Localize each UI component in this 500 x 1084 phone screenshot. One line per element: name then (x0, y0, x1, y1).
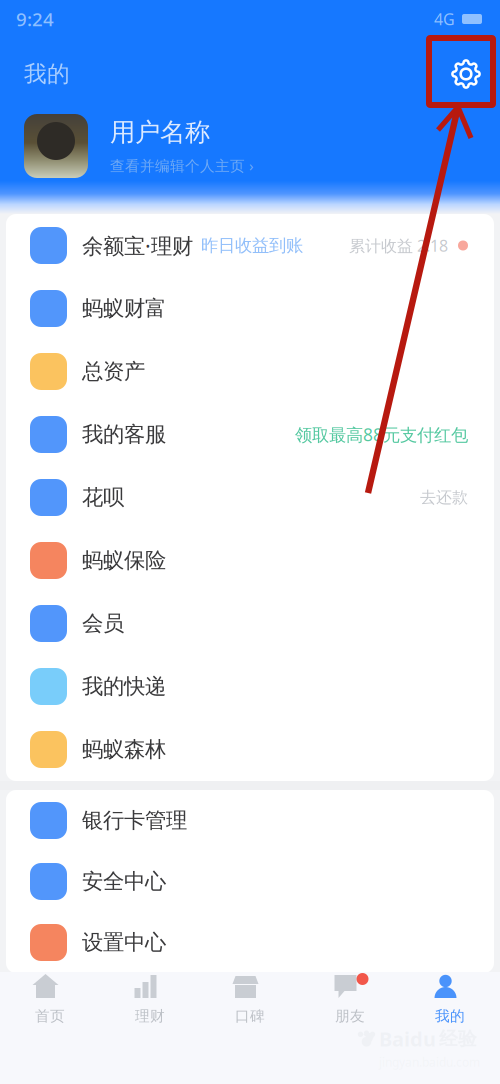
staticText: 安全中心 (82, 868, 166, 895)
staticText: 领取最高88元支付红包 (295, 423, 468, 446)
button[interactable]: 蚂蚁保险 (6, 529, 494, 592)
staticText: 4G (434, 8, 455, 30)
button[interactable]: 安全中心 (6, 851, 494, 912)
button[interactable]: 蚂蚁财富 (6, 277, 494, 340)
button[interactable]: 余额宝·理财 (6, 214, 494, 277)
staticText: 我的 (24, 60, 70, 88)
staticText: 昨日收益到账 (201, 235, 303, 256)
button[interactable]: 我的 (400, 972, 500, 1084)
staticText: 理财 (135, 1007, 165, 1025)
button[interactable]: 花呗 (6, 466, 494, 529)
button[interactable]: 朋友 (300, 972, 400, 1084)
staticText: 总资产 (82, 358, 145, 385)
staticText: 经验 (439, 1027, 477, 1050)
button[interactable]: 我的快递 (6, 655, 494, 718)
button[interactable]: 会员 (6, 592, 494, 655)
staticText: 朋友 (335, 1007, 365, 1025)
button[interactable]: 设置中心 (6, 912, 494, 973)
staticText: 蚂蚁财富 (82, 295, 166, 322)
button[interactable]: 总资产 (6, 340, 494, 403)
staticText: 查看并编辑个人主页 › (110, 156, 254, 175)
staticText: 首页 (35, 1007, 65, 1025)
button[interactable]: 首页 (0, 972, 100, 1084)
staticText: 口碑 (235, 1007, 265, 1025)
button[interactable]: 用户名称 (0, 110, 500, 182)
button[interactable]: 设置 (444, 52, 488, 96)
staticText: 花呗 (82, 484, 124, 511)
staticText: 蚂蚁森林 (82, 736, 166, 763)
staticText: 9:24 (16, 7, 54, 31)
button[interactable]: 蚂蚁森林 (6, 718, 494, 781)
button[interactable]: 银行卡管理 (6, 790, 494, 851)
staticText: 蚂蚁保险 (82, 547, 166, 574)
staticText: 我的快递 (82, 673, 166, 700)
button[interactable]: 口碑 (200, 972, 300, 1084)
staticText: 银行卡管理 (82, 807, 187, 834)
staticText: 用户名称 (110, 117, 210, 148)
staticText: 我的客服 (82, 421, 166, 448)
staticText: 我的 (435, 1007, 465, 1025)
staticText: 累计收益 2.18 (349, 235, 448, 256)
staticText: Baidu (379, 1025, 436, 1052)
staticText: 设置中心 (82, 929, 166, 956)
staticText: 去还款 (420, 488, 468, 507)
button[interactable]: 我的客服 (6, 403, 494, 466)
staticText: 余额宝·理财 (82, 231, 193, 260)
staticText: 会员 (82, 610, 124, 637)
button[interactable]: 理财 (100, 972, 200, 1084)
